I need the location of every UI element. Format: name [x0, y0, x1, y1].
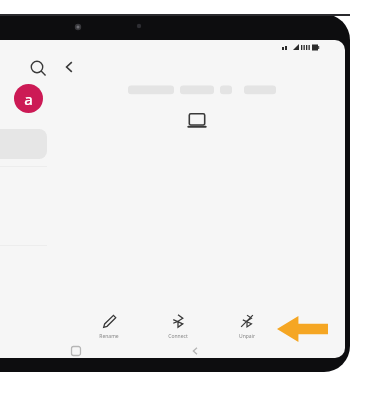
button[interactable]: Back	[187, 343, 203, 358]
staticText: a	[24, 89, 33, 109]
other: Laptop device	[186, 112, 208, 130]
button[interactable]: Unpair	[225, 314, 269, 344]
button[interactable]: Connect	[156, 314, 200, 344]
button[interactable]: a	[14, 84, 43, 113]
other: Pointer arrow highlighting Unpair	[277, 316, 328, 342]
button[interactable]: Home	[68, 343, 84, 358]
button[interactable]: Back	[58, 56, 80, 78]
staticText: Rename	[99, 333, 119, 340]
staticText: Unpair	[239, 333, 255, 340]
staticText: Connect	[168, 333, 188, 340]
button[interactable]: Search	[26, 56, 48, 78]
button[interactable]: Rename	[87, 314, 131, 344]
